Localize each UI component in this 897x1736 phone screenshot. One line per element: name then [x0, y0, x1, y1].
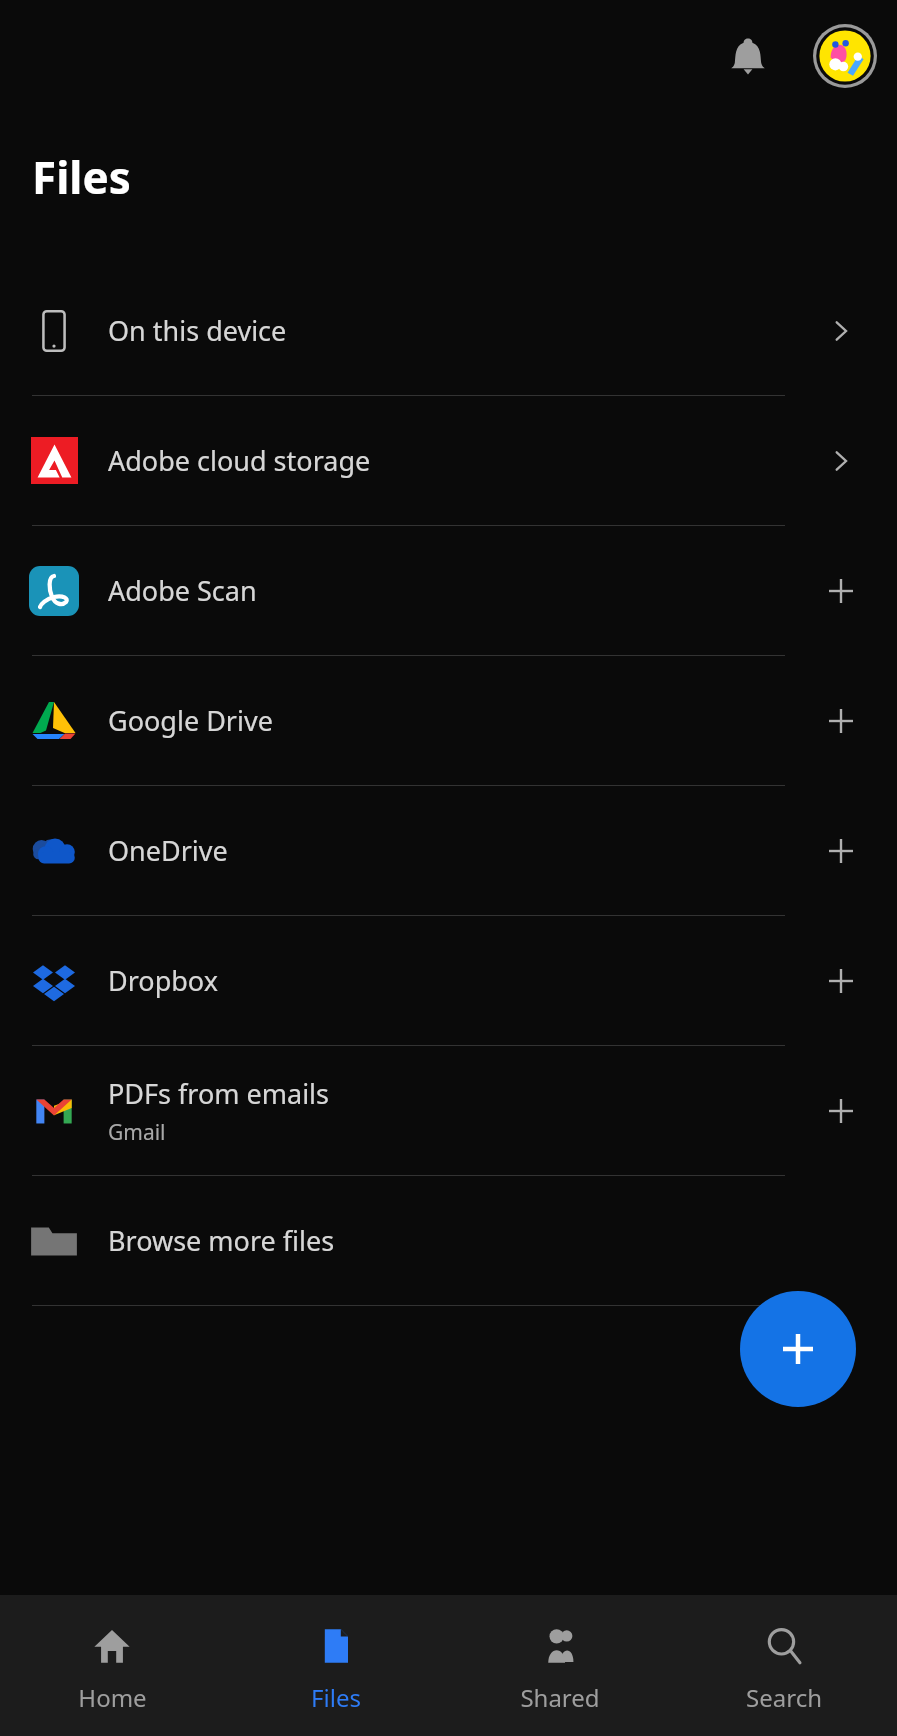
staticText: Adobe cloud storage: [108, 442, 371, 479]
staticText: Home: [78, 1681, 147, 1714]
button[interactable]: Profile: [810, 21, 880, 91]
button[interactable]: Adobe Scan: [0, 526, 897, 655]
button[interactable]: Notifications: [712, 20, 784, 92]
button[interactable]: On this device: [0, 266, 897, 395]
button[interactable]: Google Drive: [0, 656, 897, 785]
staticText: Files: [311, 1681, 361, 1714]
staticText: Google Drive: [108, 702, 273, 739]
button[interactable]: Dropbox: [0, 916, 897, 1045]
staticText: Files: [32, 147, 131, 207]
button[interactable]: Adobe cloud storage: [0, 396, 897, 525]
staticText: Adobe Scan: [108, 572, 257, 609]
staticText: Browse more files: [108, 1222, 335, 1259]
staticText: OneDrive: [108, 832, 228, 869]
button[interactable]: Files: [224, 1601, 448, 1736]
button[interactable]: Shared: [448, 1601, 672, 1736]
staticText: PDFs from emails: [108, 1075, 329, 1112]
button[interactable]: Search: [672, 1601, 896, 1736]
button[interactable]: OneDrive: [0, 786, 897, 915]
button[interactable]: Home: [0, 1601, 224, 1736]
button[interactable]: PDFs from emails: [0, 1046, 897, 1175]
staticText: Search: [746, 1681, 822, 1714]
staticText: Gmail: [108, 1118, 166, 1147]
staticText: Shared: [520, 1681, 600, 1714]
button[interactable]: Create new file: [740, 1291, 856, 1407]
staticText: On this device: [108, 312, 287, 349]
button[interactable]: Browse more files: [0, 1176, 897, 1305]
staticText: Dropbox: [108, 962, 218, 999]
